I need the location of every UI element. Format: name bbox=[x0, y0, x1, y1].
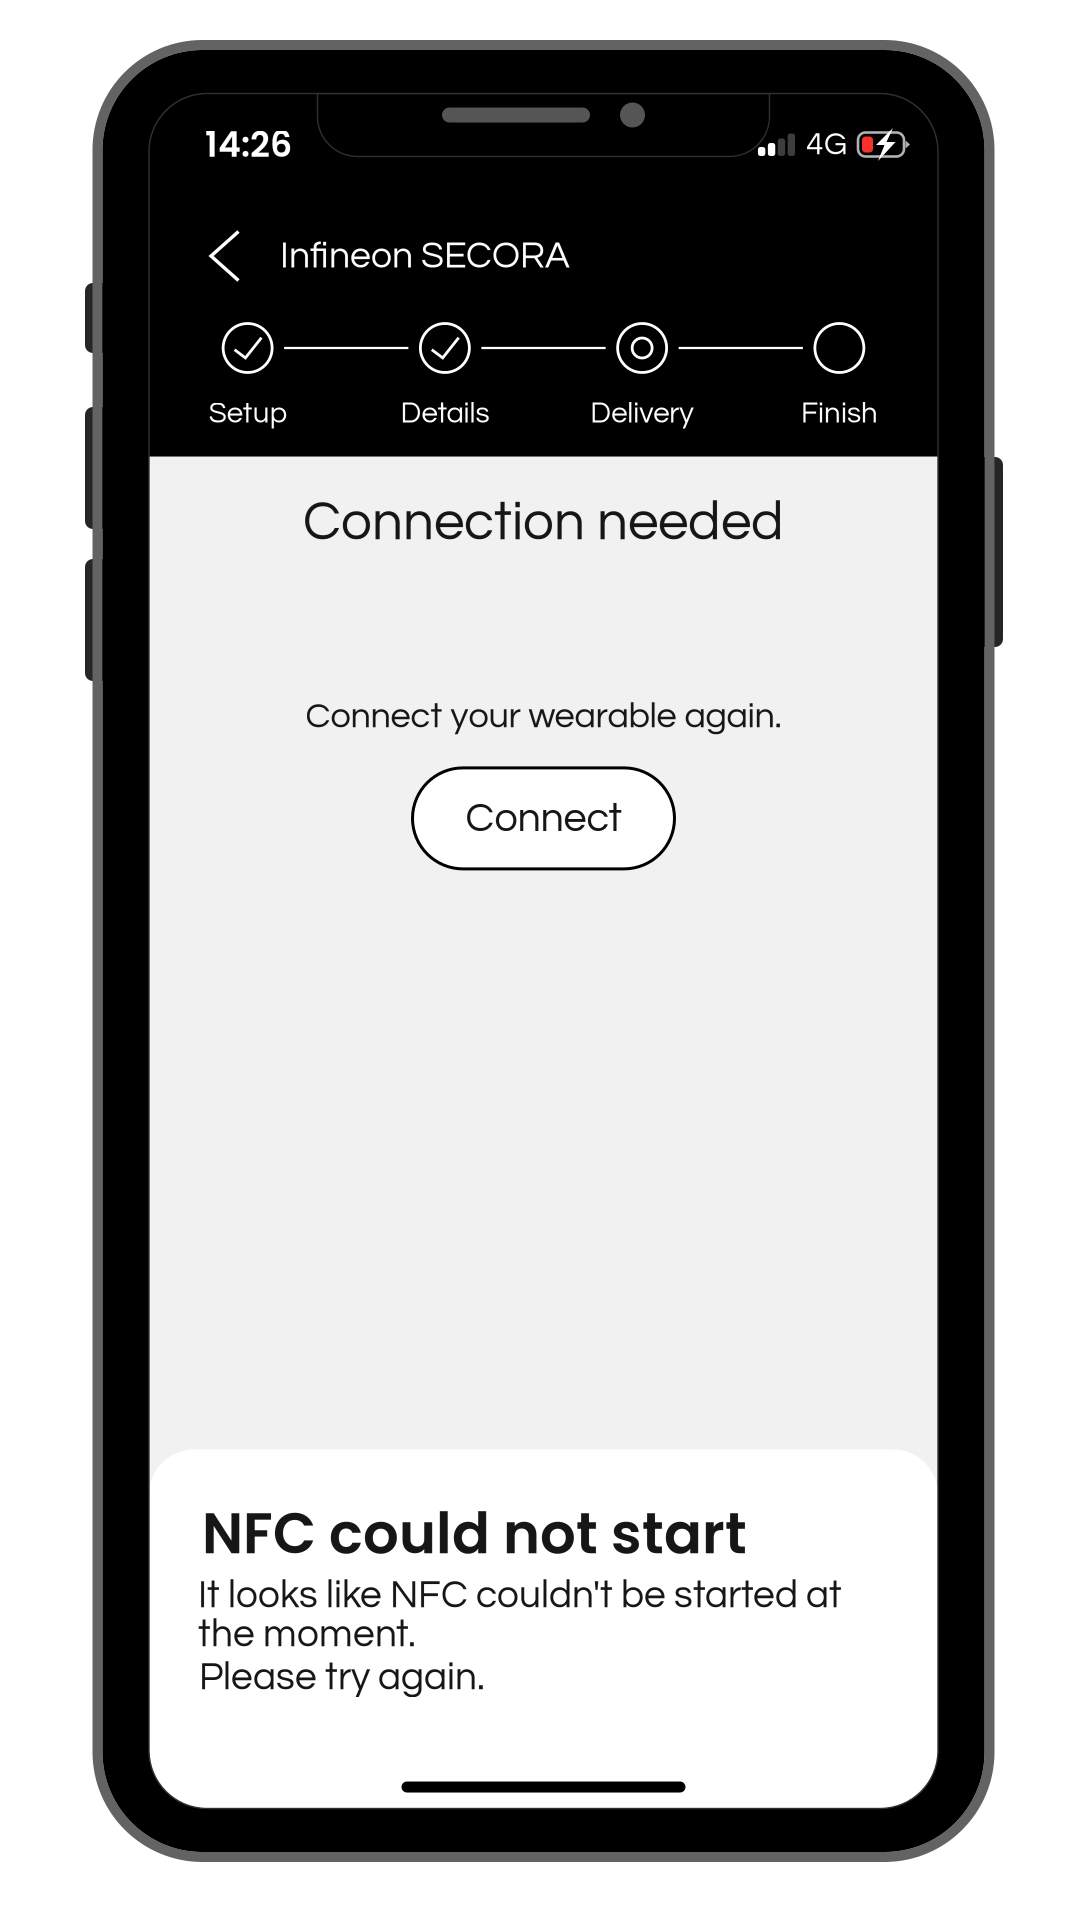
button[interactable]: Back bbox=[149, 215, 280, 296]
staticText: Connection needed bbox=[303, 494, 784, 551]
staticText: It looks like NFC couldn't be started at bbox=[198, 1575, 842, 1615]
button[interactable]: Connect bbox=[412, 768, 674, 869]
staticText: Infineon SECORA bbox=[280, 237, 570, 275]
staticText: Setup bbox=[209, 398, 287, 429]
staticText: 4G bbox=[806, 128, 847, 161]
staticText: Finish bbox=[801, 398, 878, 429]
staticText: 14:26 bbox=[205, 120, 292, 169]
staticText: Connect your wearable again. bbox=[305, 698, 781, 735]
staticText: Please try again. bbox=[199, 1657, 485, 1697]
staticText: NFC could not start bbox=[202, 1494, 747, 1573]
staticText: Details bbox=[400, 398, 489, 429]
staticText: Delivery bbox=[590, 398, 694, 429]
staticText: Connect bbox=[465, 797, 621, 840]
staticText: the moment. bbox=[198, 1614, 416, 1654]
